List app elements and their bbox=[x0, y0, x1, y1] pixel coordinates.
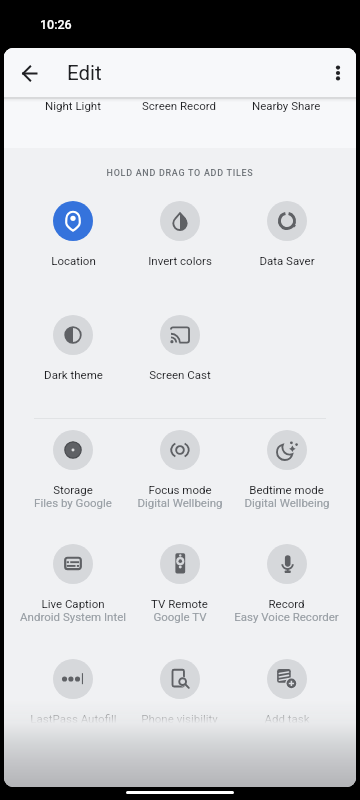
staticText: Files by Google bbox=[34, 496, 112, 509]
button[interactable]: Screen Cast bbox=[126, 315, 233, 381]
staticText: Focus mode bbox=[148, 483, 212, 496]
staticText: Android System Intell.. bbox=[20, 610, 126, 623]
staticText: Screen Cast bbox=[149, 368, 211, 381]
staticText: HOLD AND DRAG TO ADD TILES bbox=[4, 168, 356, 179]
button[interactable]: Live Caption bbox=[20, 544, 126, 623]
staticText: Invert colors bbox=[148, 254, 212, 267]
staticText: 10:26 bbox=[40, 17, 72, 32]
staticText: Nearby Share bbox=[252, 99, 321, 112]
staticText: Google TV bbox=[153, 610, 207, 623]
staticText: SmartThings bbox=[147, 725, 213, 738]
staticText: Add task bbox=[264, 712, 310, 725]
staticText: Screen Record bbox=[142, 99, 217, 112]
staticText: Storage bbox=[53, 483, 93, 496]
staticText: Bedtime mode bbox=[249, 483, 324, 496]
button[interactable]: TV Remote bbox=[126, 544, 233, 623]
button[interactable]: More options bbox=[318, 53, 356, 93]
button[interactable]: Dark theme bbox=[20, 315, 126, 381]
staticText: LastPass bbox=[49, 725, 97, 738]
button[interactable]: Invert colors bbox=[126, 201, 233, 267]
button[interactable]: Focus mode bbox=[126, 430, 233, 509]
button[interactable]: Bedtime mode bbox=[233, 430, 340, 509]
button[interactable]: Data Saver bbox=[233, 201, 340, 267]
staticText: Todoist bbox=[267, 725, 306, 738]
staticText: Night Light bbox=[45, 99, 101, 112]
staticText: TV Remote bbox=[151, 597, 208, 610]
button[interactable]: LastPass Autofill bbox=[20, 659, 126, 738]
staticText: Location bbox=[51, 254, 96, 267]
button[interactable]: Phone visibility bbox=[126, 659, 233, 738]
button[interactable]: Storage bbox=[20, 430, 126, 509]
staticText: Live Caption bbox=[41, 597, 105, 610]
staticText: Dark theme bbox=[44, 368, 103, 381]
staticText: Data Saver bbox=[259, 254, 315, 267]
staticText: Digital Wellbeing bbox=[244, 496, 330, 509]
button[interactable]: Record bbox=[233, 544, 340, 623]
staticText: Phone visibility bbox=[141, 712, 218, 725]
staticText: Easy Voice Recorder bbox=[234, 610, 339, 623]
staticText: LastPass Autofill bbox=[30, 712, 117, 725]
staticText: Edit bbox=[67, 61, 102, 85]
button[interactable]: Back bbox=[9, 53, 49, 93]
button[interactable]: Add task bbox=[233, 659, 340, 738]
staticText: Digital Wellbeing bbox=[137, 496, 223, 509]
staticText: Record bbox=[268, 597, 305, 610]
button[interactable]: Location bbox=[20, 201, 126, 267]
